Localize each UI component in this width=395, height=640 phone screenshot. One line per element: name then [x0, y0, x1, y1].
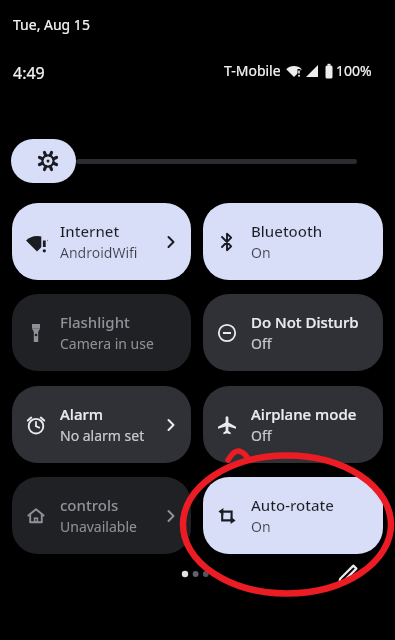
button[interactable]: Airplane mode	[203, 386, 383, 463]
staticText: Airplane mode	[251, 404, 357, 424]
staticText: Internet	[60, 221, 120, 241]
staticText: Tue, Aug 15	[13, 15, 90, 34]
staticText: Off	[251, 426, 272, 445]
button[interactable]: Do Not Disturb	[203, 294, 383, 371]
staticText: Off	[251, 334, 272, 353]
staticText: Alarm	[60, 404, 104, 424]
staticText: Auto-rotate	[251, 495, 334, 515]
staticText: 100%	[336, 61, 372, 80]
staticText: Flashlight	[60, 312, 130, 332]
button[interactable]: controls	[12, 477, 191, 554]
button[interactable]: Bluetooth	[203, 203, 383, 280]
staticText: Camera in use	[60, 334, 154, 353]
button[interactable]	[332, 558, 364, 590]
staticText: T-Mobile	[224, 61, 281, 80]
staticText: Unavailable	[60, 517, 137, 536]
button[interactable]: Auto-rotate	[203, 477, 383, 554]
button[interactable]	[11, 139, 76, 183]
staticText: 4:49	[13, 62, 45, 84]
staticText: On	[251, 243, 271, 262]
button[interactable]: Alarm	[12, 386, 191, 463]
staticText: Do Not Disturb	[251, 312, 359, 332]
button[interactable]: Internet	[12, 203, 191, 280]
button[interactable]: Flashlight	[12, 294, 191, 371]
staticText: On	[251, 517, 271, 536]
staticText: AndroidWifi	[60, 243, 138, 262]
staticText: controls	[60, 495, 119, 515]
staticText: Bluetooth	[251, 221, 323, 241]
staticText: No alarm set	[60, 426, 145, 445]
